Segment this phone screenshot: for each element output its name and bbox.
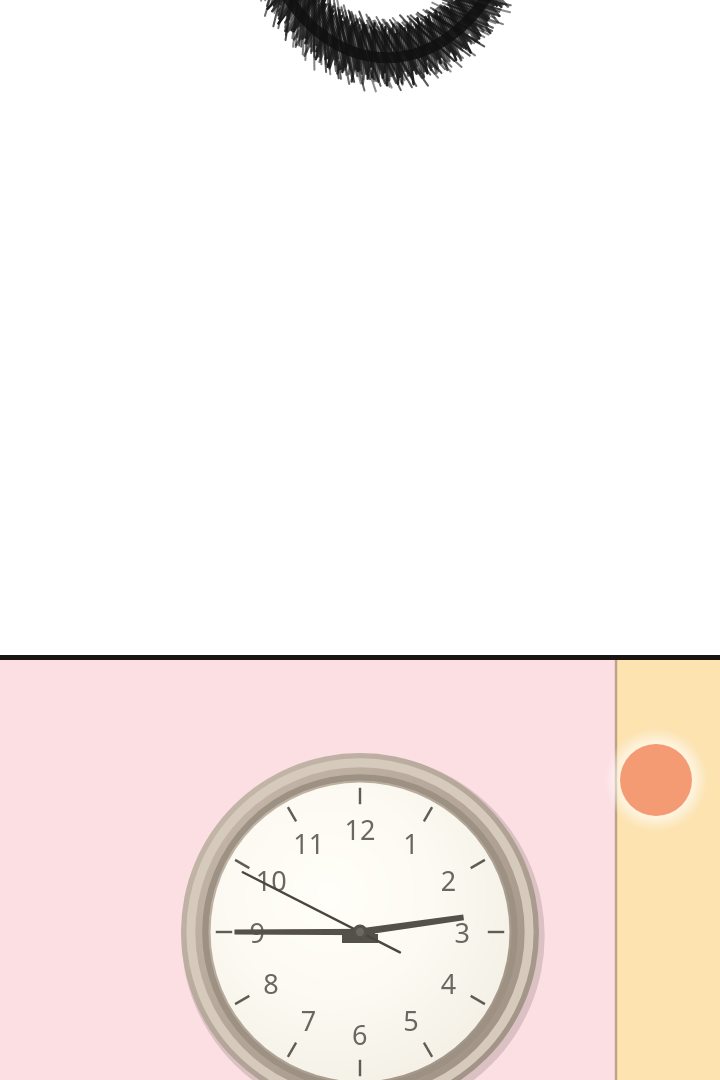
button[interactable]: Wall clock scene — [0, 0, 720, 1080]
